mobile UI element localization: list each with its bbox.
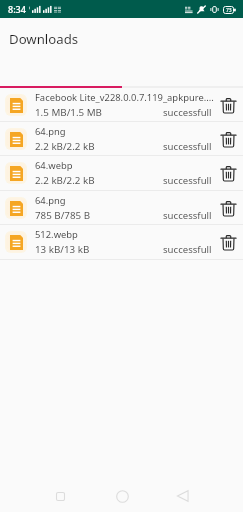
staticText: 512.webp xyxy=(35,228,78,241)
staticText: successfull xyxy=(163,243,212,256)
button[interactable]: Delete xyxy=(216,230,240,254)
staticText: 785 B/785 B xyxy=(35,209,91,222)
staticText: 2.2 kB/2.2 kB xyxy=(35,140,95,153)
button[interactable]: Back xyxy=(168,483,198,509)
button[interactable]: Delete xyxy=(216,127,240,151)
button[interactable]: Recents xyxy=(45,483,75,509)
staticText: 1.5 MB/1.5 MB xyxy=(35,106,102,119)
staticText: successfull xyxy=(163,209,212,222)
staticText: 64.png xyxy=(35,194,66,207)
button[interactable]: Facebook Lite_v228.0.0.7.119_apkpure.... xyxy=(0,88,243,122)
button[interactable]: Delete xyxy=(216,196,240,220)
button[interactable]: Home xyxy=(107,483,137,509)
button[interactable]: 64.webp xyxy=(0,156,243,191)
staticText: Downloads xyxy=(9,30,79,48)
button[interactable]: 64.png xyxy=(0,191,243,225)
staticText: 64.png xyxy=(35,125,66,138)
staticText: successfull xyxy=(163,174,212,187)
button[interactable]: 512.webp xyxy=(0,225,243,260)
staticText: 8:34 xyxy=(8,3,26,15)
staticText: Facebook Lite_v228.0.0.7.119_apkpure.... xyxy=(35,91,214,104)
staticText: 73 xyxy=(226,7,232,14)
staticText: 2.2 kB/2.2 kB xyxy=(35,174,95,187)
staticText: successfull xyxy=(163,140,212,153)
button[interactable]: Delete xyxy=(216,93,240,117)
staticText: 13 kB/13 kB xyxy=(35,243,90,256)
button[interactable]: Delete xyxy=(216,161,240,185)
staticText: successfull xyxy=(163,106,212,119)
button[interactable]: 64.png xyxy=(0,122,243,156)
staticText: 64.webp xyxy=(35,159,73,172)
